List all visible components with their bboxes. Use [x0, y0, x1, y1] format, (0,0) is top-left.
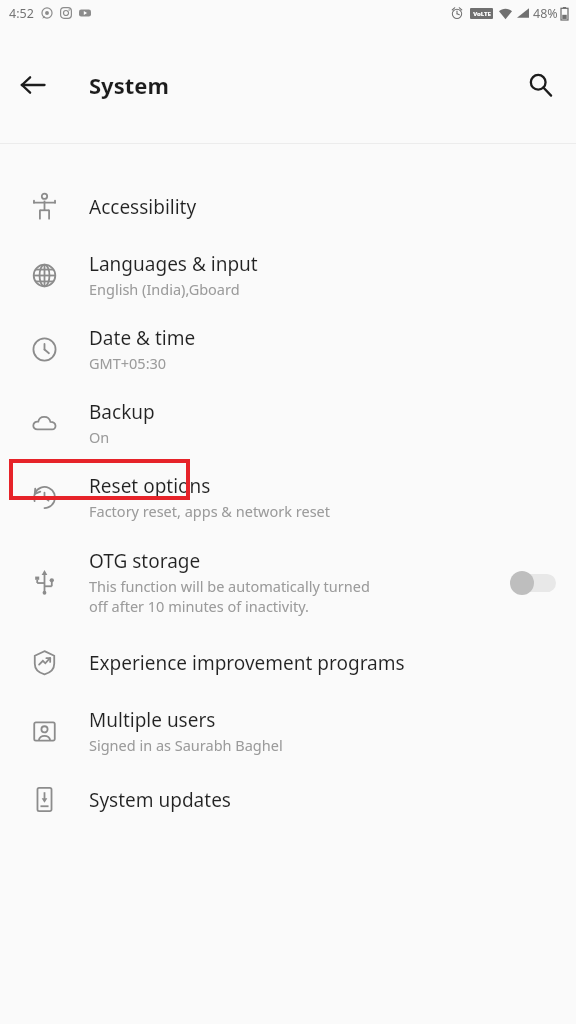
- staticText: Factory reset, apps & network reset: [89, 501, 331, 521]
- staticText: Languages & input: [89, 251, 258, 277]
- button[interactable]: System updates: [0, 768, 576, 831]
- button[interactable]: OTG storage toggle: [500, 561, 576, 605]
- staticText: 4:52: [9, 5, 34, 22]
- staticText: Reset options: [89, 473, 211, 499]
- staticText: This function will be automatically turn…: [89, 576, 370, 617]
- button[interactable]: OTG storage: [0, 534, 576, 631]
- staticText: Experience improvement programs: [89, 650, 405, 676]
- button[interactable]: Date & time: [0, 312, 576, 386]
- staticText: OTG storage: [89, 548, 201, 574]
- button[interactable]: Experience improvement programs: [0, 631, 576, 694]
- staticText: Multiple users: [89, 707, 216, 733]
- staticText: English (India),Gboard: [89, 279, 240, 299]
- button[interactable]: Back: [9, 61, 57, 109]
- staticText: Date & time: [89, 325, 196, 351]
- staticText: System: [89, 70, 169, 100]
- staticText: Backup: [89, 399, 155, 425]
- staticText: GMT+05:30: [89, 353, 167, 373]
- button[interactable]: Languages & input: [0, 238, 576, 312]
- button[interactable]: Accessibility: [0, 175, 576, 238]
- button[interactable]: Reset options: [0, 460, 576, 534]
- button[interactable]: Backup: [0, 386, 576, 460]
- staticText: Signed in as Saurabh Baghel: [89, 735, 283, 755]
- staticText: 48%: [533, 5, 558, 22]
- staticText: VoLTE: [473, 10, 491, 18]
- staticText: On: [89, 427, 110, 447]
- staticText: System updates: [89, 787, 231, 813]
- staticText: Accessibility: [89, 194, 197, 220]
- button[interactable]: Multiple users: [0, 694, 576, 768]
- button[interactable]: Search: [516, 61, 564, 109]
